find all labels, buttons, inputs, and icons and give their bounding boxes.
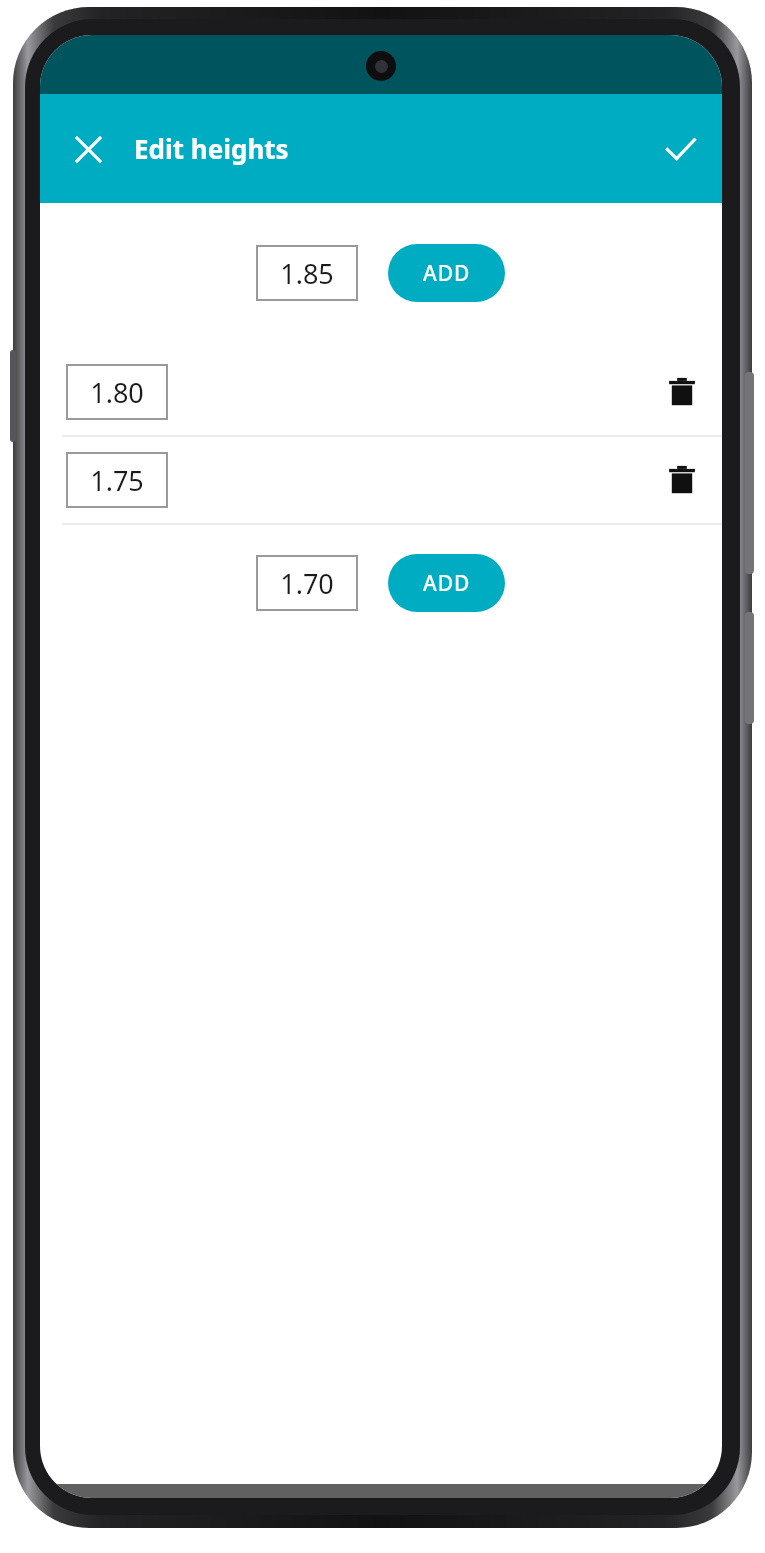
staticText: 1.70 xyxy=(280,565,334,602)
button[interactable]: 1.70 xyxy=(256,555,358,611)
button[interactable]: 1.85 xyxy=(256,245,358,301)
staticText: ADD xyxy=(423,569,471,598)
button[interactable]: Close xyxy=(56,117,120,181)
button[interactable]: ADD xyxy=(388,554,505,612)
staticText: 1.85 xyxy=(280,255,334,292)
staticText: 1.75 xyxy=(90,462,144,499)
button[interactable]: 1.75 xyxy=(40,437,722,523)
button[interactable]: 1.80 xyxy=(66,364,168,420)
staticText: ADD xyxy=(423,259,471,288)
button[interactable]: 1.75 xyxy=(66,452,168,508)
button[interactable]: Confirm xyxy=(648,117,712,181)
staticText: 1.80 xyxy=(90,374,144,411)
button[interactable]: 1.80 xyxy=(40,349,722,435)
button[interactable]: Delete xyxy=(650,448,714,512)
staticText: Edit heights xyxy=(134,131,289,166)
button[interactable]: Delete xyxy=(650,360,714,424)
button[interactable]: ADD xyxy=(388,244,505,302)
